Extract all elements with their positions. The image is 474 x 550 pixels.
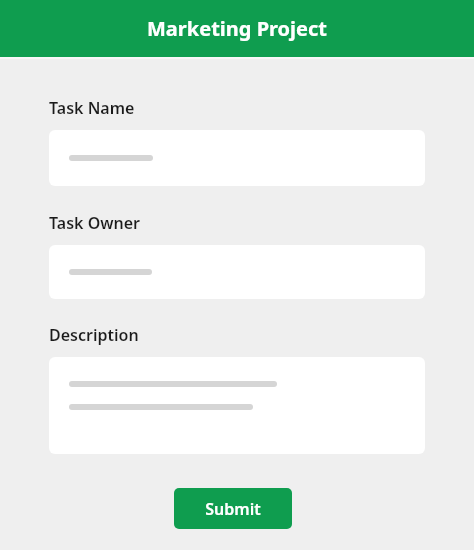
staticText: Task Name	[49, 97, 135, 119]
staticText: Submit	[205, 498, 261, 520]
button[interactable]: Task Name input	[49, 130, 425, 186]
button[interactable]: Task Owner input	[49, 245, 425, 299]
button[interactable]: Description input	[49, 357, 425, 454]
button[interactable]: Submit	[174, 488, 292, 529]
staticText: Marketing Project	[147, 15, 327, 42]
staticText: Task Owner	[49, 212, 141, 234]
staticText: Description	[49, 324, 139, 346]
